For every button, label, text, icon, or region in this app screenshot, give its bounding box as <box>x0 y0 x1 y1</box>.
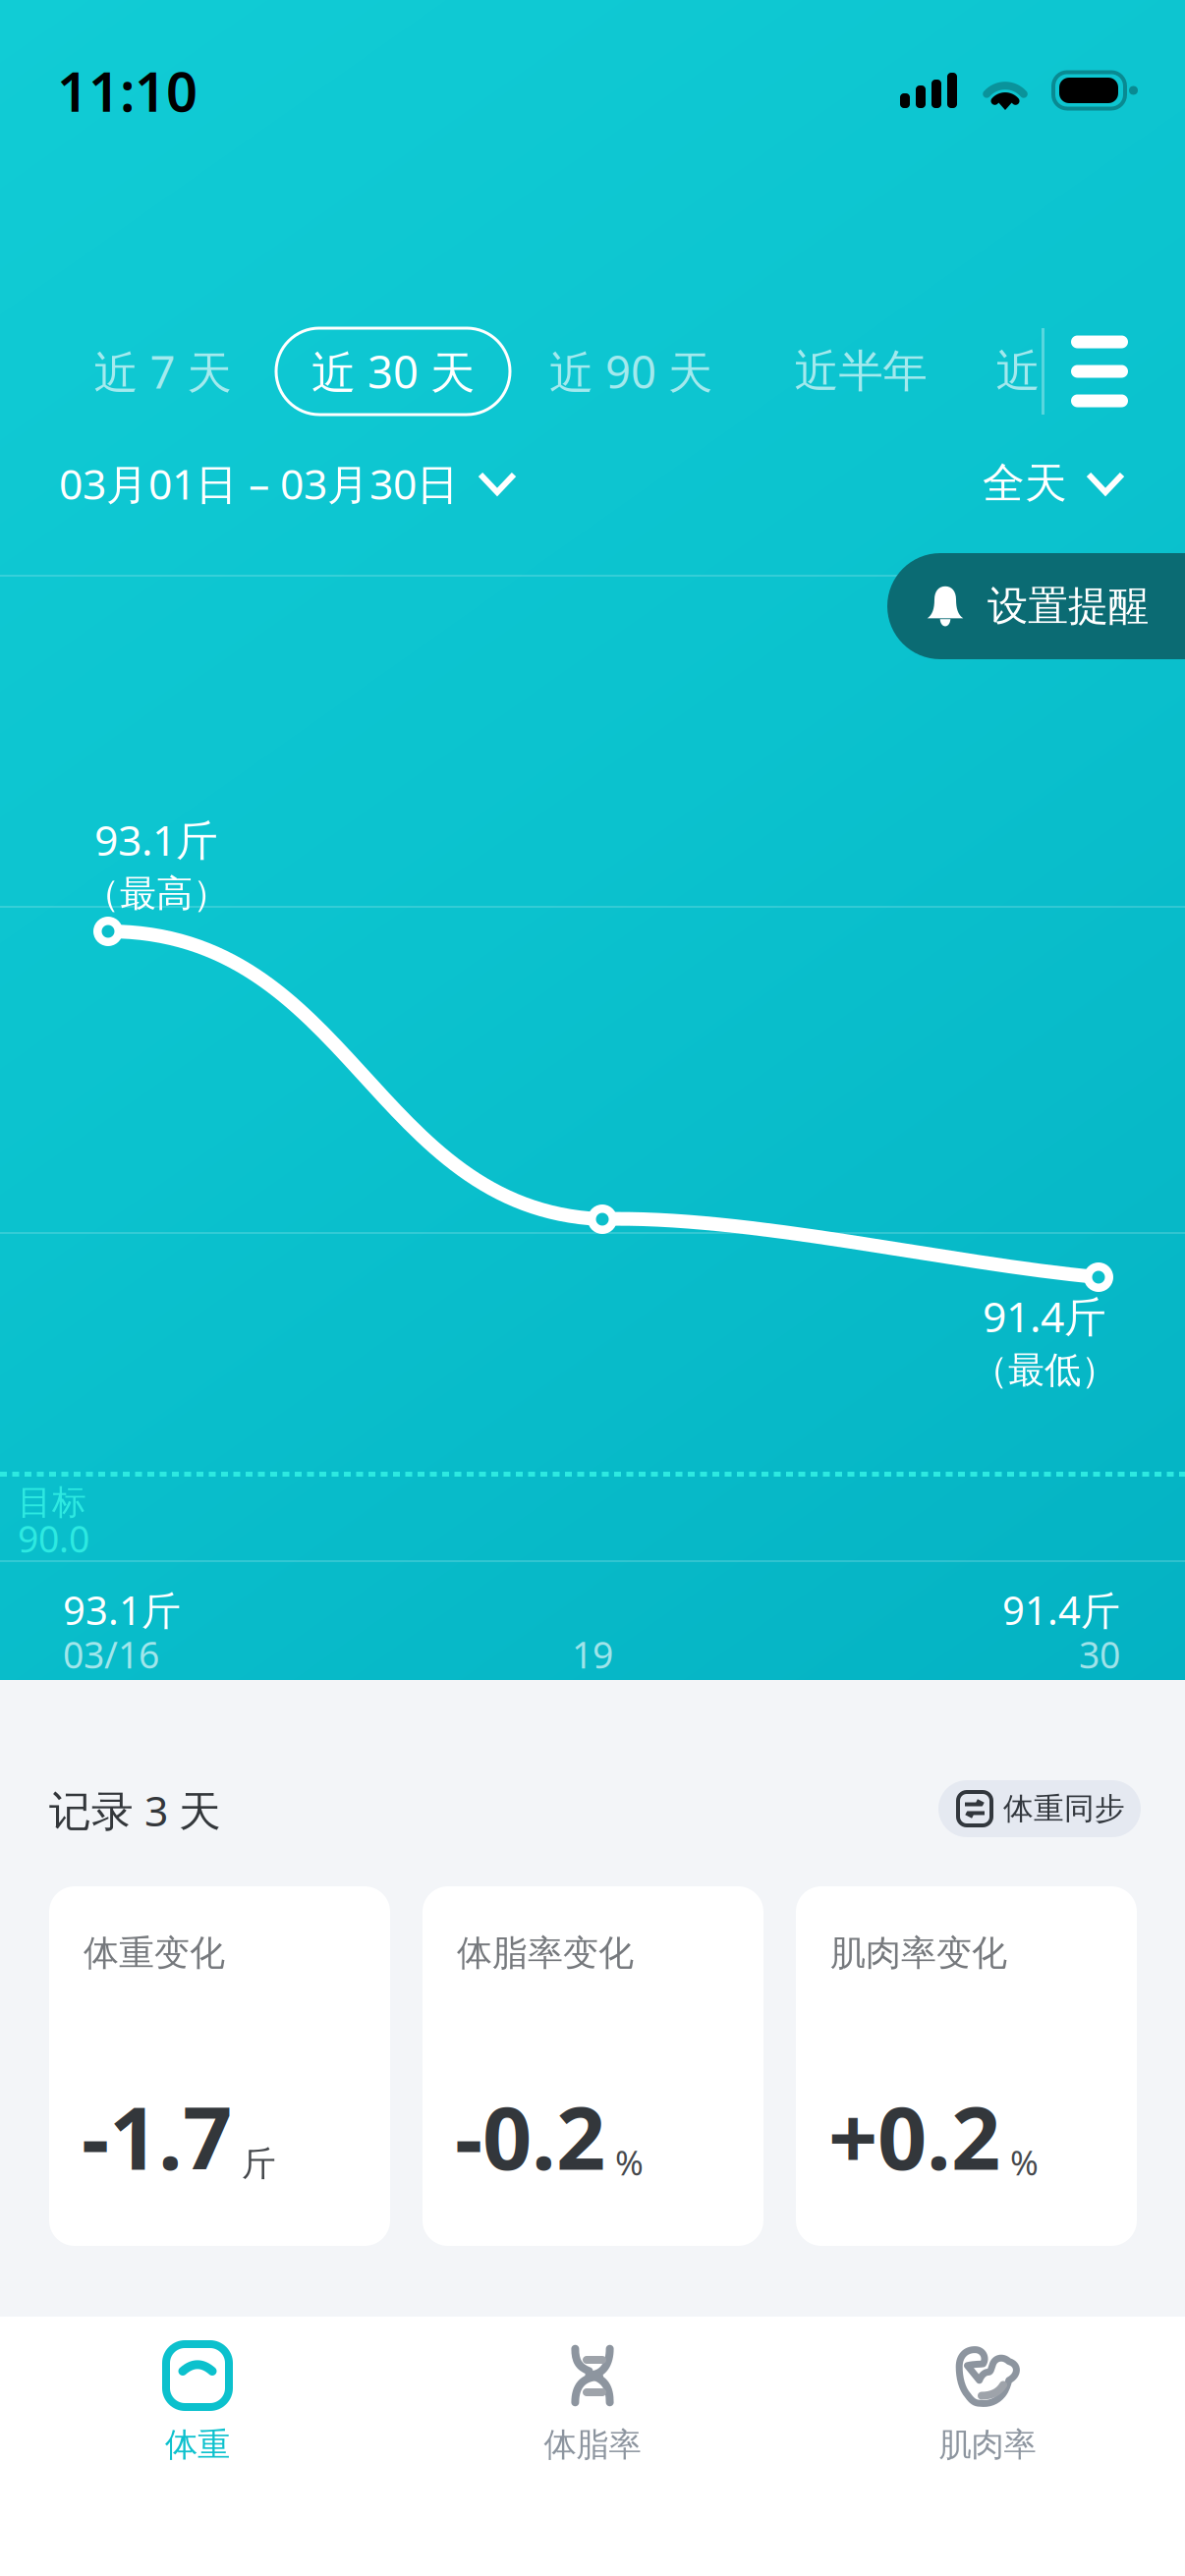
staticText: % <box>615 2140 644 2185</box>
staticText: 记录 3 天 <box>49 1782 221 1838</box>
button[interactable]: 近半年 <box>792 328 930 415</box>
staticText: 93.1斤 <box>63 1584 181 1636</box>
staticText: 近 7 天 <box>94 342 231 401</box>
staticText: 03月01日 – 03月30日 <box>59 456 459 511</box>
button[interactable]: 近 30 天 <box>276 328 510 415</box>
button[interactable]: 设置提醒 <box>887 553 1185 659</box>
staticText: % <box>1010 2140 1039 2185</box>
button[interactable]: 近 <box>994 328 1042 415</box>
staticText: 93.1斤 <box>94 812 218 867</box>
staticText: 肌肉率变化 <box>830 1932 1007 1975</box>
staticText: -1.7 <box>82 2079 232 2194</box>
staticText: （最高） <box>84 871 229 916</box>
button[interactable]: 近 90 天 <box>546 328 715 415</box>
staticText: 体重 <box>165 2425 230 2465</box>
staticText: 近 30 天 <box>311 342 475 401</box>
staticText: 03/16 <box>63 1630 159 1679</box>
staticText: 目标 <box>18 1482 86 1523</box>
staticText: 91.4斤 <box>1002 1584 1120 1636</box>
staticText: 肌肉率 <box>939 2425 1036 2465</box>
staticText: 体脂率 <box>544 2425 641 2465</box>
staticText: 19 <box>572 1630 613 1679</box>
button[interactable]: 近 7 天 <box>92 328 233 415</box>
staticText: 30 <box>1079 1630 1120 1679</box>
staticText: -0.2 <box>455 2079 605 2194</box>
staticText: 设置提醒 <box>987 581 1149 631</box>
staticText: 全天 <box>983 458 1067 509</box>
staticText: 近半年 <box>794 344 927 399</box>
staticText: （最低） <box>972 1348 1117 1393</box>
staticText: 体重变化 <box>84 1932 225 1975</box>
staticText: 11:10 <box>57 54 197 127</box>
staticText: 近 90 天 <box>549 342 712 401</box>
button[interactable]: 体重同步 <box>938 1780 1141 1837</box>
button[interactable]: 全天 <box>983 444 1122 523</box>
button[interactable]: 肌肉率 <box>790 2342 1185 2465</box>
staticText: 体重同步 <box>1003 1790 1125 1827</box>
staticText: 91.4斤 <box>983 1288 1106 1344</box>
staticText: +0.2 <box>828 2079 1000 2194</box>
staticText: 90.0 <box>18 1514 89 1563</box>
button[interactable]: More ranges <box>1055 328 1144 415</box>
staticText: 斤 <box>242 2143 276 2185</box>
staticText: 体脂率变化 <box>457 1932 634 1975</box>
button[interactable]: 体重 <box>0 2342 395 2465</box>
staticText: 近 <box>996 344 1040 399</box>
button[interactable]: 03月01日 – 03月30日 <box>59 444 514 523</box>
button[interactable]: 体脂率 <box>395 2342 790 2465</box>
